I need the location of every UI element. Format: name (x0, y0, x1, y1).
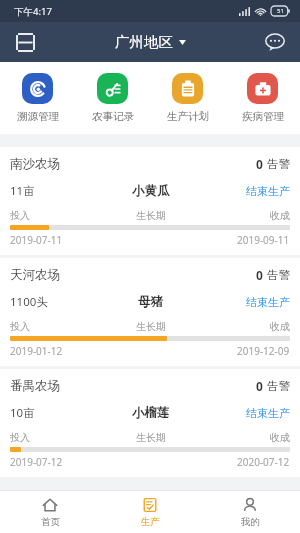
button[interactable]: 结束生产 (197, 406, 290, 420)
staticText: 我的 (241, 516, 260, 528)
staticText: 2019-07-12 (10, 455, 63, 469)
staticText: 农事记录 (92, 110, 134, 123)
staticText: 2020-07-12 (237, 455, 290, 469)
staticText: 51 (277, 7, 284, 15)
staticText: 0 (256, 378, 263, 394)
button[interactable]: 溯源管理 (0, 71, 75, 125)
staticText: 2019-12-09 (237, 344, 290, 358)
button[interactable]: Scan (8, 25, 42, 59)
staticText: 生长期 (136, 320, 166, 333)
staticText: 广州地区 (115, 33, 173, 51)
staticText: 告警 (267, 157, 290, 171)
staticText: 2019-09-11 (237, 233, 290, 247)
staticText: 下午4:17 (14, 5, 52, 18)
staticText: 南沙农场 (10, 156, 60, 172)
button[interactable]: 生产 (100, 491, 200, 533)
staticText: 生长期 (136, 431, 166, 444)
button[interactable]: 番禺农场 (0, 369, 300, 477)
staticText: 告警 (267, 379, 290, 393)
staticText: 投入 (10, 209, 30, 222)
staticText: 投入 (10, 320, 30, 333)
staticText: 收成 (270, 431, 290, 444)
staticText: 收成 (270, 209, 290, 222)
button[interactable]: 天河农场 (0, 258, 300, 366)
staticText: 生产 (141, 516, 160, 528)
staticText: 2019-07-11 (10, 233, 63, 247)
button[interactable]: 我的 (200, 491, 300, 533)
button[interactable]: 广州地区 (109, 29, 192, 55)
staticText: 11亩 (10, 183, 35, 199)
button[interactable]: Messages (258, 25, 292, 59)
button[interactable]: 南沙农场 (0, 147, 300, 255)
button[interactable]: 疾病管理 (225, 71, 300, 125)
button[interactable]: 生产计划 (150, 71, 225, 125)
staticText: 结束生产 (246, 184, 290, 198)
staticText: 2019-01-12 (10, 344, 63, 358)
staticText: 投入 (10, 431, 30, 444)
staticText: 10亩 (10, 405, 35, 421)
staticText: 告警 (267, 268, 290, 282)
staticText: 番禺农场 (10, 378, 60, 394)
staticText: 小黄瓜 (132, 183, 170, 199)
staticText: 结束生产 (246, 295, 290, 309)
button[interactable]: 首页 (0, 491, 100, 533)
staticText: 生产计划 (167, 110, 209, 123)
button[interactable]: 结束生产 (197, 184, 290, 198)
staticText: 天河农场 (10, 267, 60, 283)
staticText: 1100头 (10, 294, 48, 310)
staticText: 首页 (41, 516, 60, 528)
staticText: 结束生产 (246, 406, 290, 420)
button[interactable]: 农事记录 (75, 71, 150, 125)
staticText: 0 (256, 267, 263, 283)
staticText: 小榴莲 (132, 405, 170, 421)
staticText: 收成 (270, 320, 290, 333)
staticText: 溯源管理 (17, 110, 59, 123)
button[interactable]: 结束生产 (197, 295, 290, 309)
staticText: 疾病管理 (242, 110, 284, 123)
staticText: 生长期 (136, 209, 166, 222)
staticText: 母猪 (138, 294, 163, 310)
staticText: 0 (256, 156, 263, 172)
